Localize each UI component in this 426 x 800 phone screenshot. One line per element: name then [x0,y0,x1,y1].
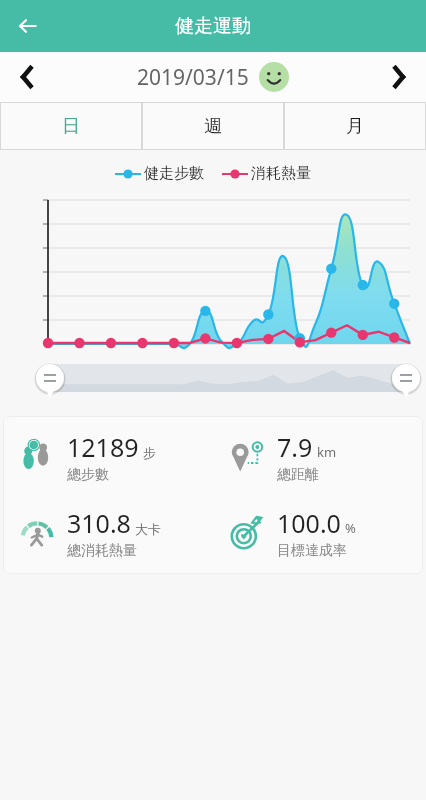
staticText: 總步數 [67,466,109,484]
button[interactable]: Back [6,4,50,48]
staticText: 310.8 [67,506,131,540]
button[interactable]: 週 [142,102,284,150]
button[interactable]: Mood [259,62,289,92]
button[interactable]: 310.8 [3,506,213,560]
button[interactable]: Previous day [4,54,50,100]
button[interactable]: Next day [376,54,422,100]
staticText: 目標達成率 [277,542,347,560]
staticText: 100.0 [277,506,341,540]
staticText: % [345,519,356,537]
staticText: km [317,443,337,461]
staticText: 2019/03/15 [137,63,249,92]
staticText: 月 [346,115,364,138]
button[interactable]: 100.0 [213,506,423,560]
button[interactable]: 12189 [3,430,213,484]
staticText: 大卡 [135,521,161,537]
button[interactable]: 月 [284,102,426,150]
staticText: 總距離 [277,466,319,484]
staticText: 7.9 [277,430,313,464]
button[interactable]: 7.9 [213,430,423,484]
staticText: 週 [204,115,222,138]
staticText: 步 [143,445,156,461]
staticText: 健走運動 [175,14,251,38]
staticText: 總消耗熱量 [67,542,137,560]
staticText: 日 [62,115,80,138]
staticText: 12189 [67,430,139,464]
staticText: 消耗熱量 [251,164,311,183]
button[interactable]: 日 [0,102,142,150]
staticText: 健走步數 [144,164,204,183]
